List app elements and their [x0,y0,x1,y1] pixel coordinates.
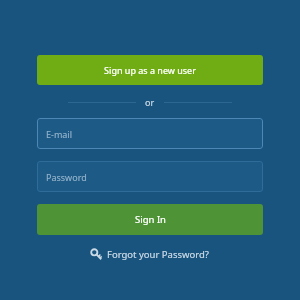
button[interactable]: Forgot your Password [37,248,263,261]
other: Forgot your Password [91,249,102,260]
staticText: or [145,96,155,108]
staticText: E-mail [46,128,73,140]
staticText: Forgot your Password? [107,248,209,261]
staticText: Sign up as a new user [104,64,196,76]
staticText: Sign In [135,213,166,226]
button[interactable]: Sign up as a new user [37,55,263,85]
staticText: Password [46,171,87,183]
button[interactable]: Sign In [37,204,263,235]
button[interactable]: E-mail [37,118,263,149]
button[interactable]: Password [37,161,263,192]
